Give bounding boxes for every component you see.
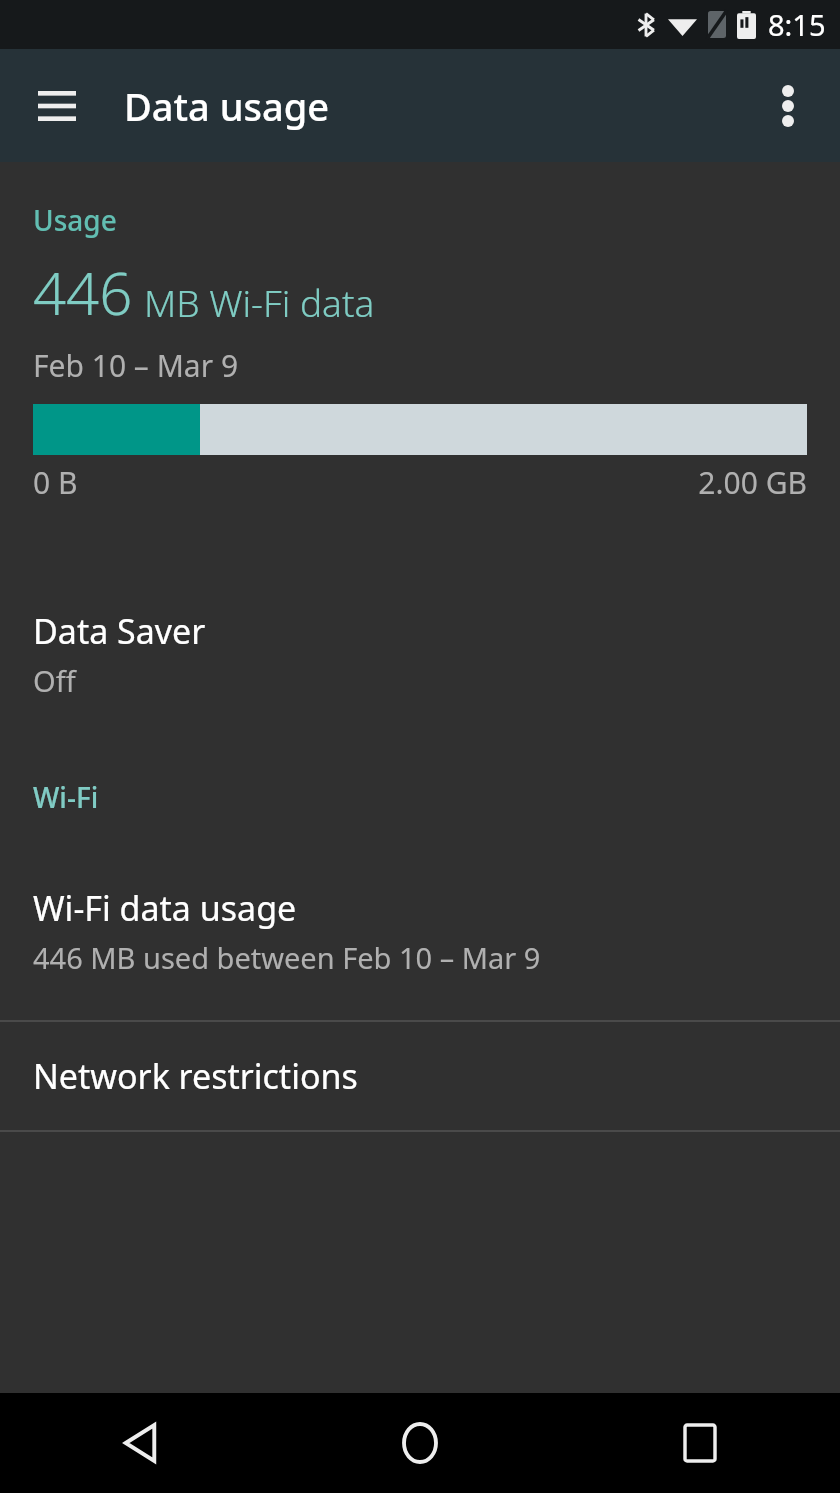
button[interactable]: Network restrictions <box>0 1022 840 1130</box>
staticText: Wi-Fi <box>33 778 99 816</box>
staticText: 8:15 <box>768 5 826 44</box>
staticText: Off <box>33 661 76 700</box>
button[interactable]: Open navigation menu <box>12 61 102 151</box>
staticText: Data usage <box>124 80 330 132</box>
staticText: 0 B <box>33 462 78 503</box>
staticText: Usage <box>33 201 117 239</box>
button[interactable]: Wi-Fi data usage <box>0 881 840 981</box>
button[interactable]: Data Saver <box>0 602 840 706</box>
button[interactable]: Home <box>280 1393 560 1493</box>
button[interactable]: More options <box>744 62 832 150</box>
staticText: 446 <box>33 253 133 332</box>
staticText: Wi-Fi data usage <box>33 885 297 931</box>
staticText: Network restrictions <box>33 1053 358 1099</box>
staticText: Data Saver <box>33 608 206 654</box>
staticText: 446 MB used between Feb 10 – Mar 9 <box>33 938 541 977</box>
staticText: 2.00 GB <box>698 462 807 503</box>
staticText: Feb 10 – Mar 9 <box>33 345 239 386</box>
button[interactable]: Back <box>0 1393 280 1493</box>
button[interactable]: Recent apps <box>560 1393 840 1493</box>
staticText: MB Wi-Fi data <box>144 277 375 327</box>
